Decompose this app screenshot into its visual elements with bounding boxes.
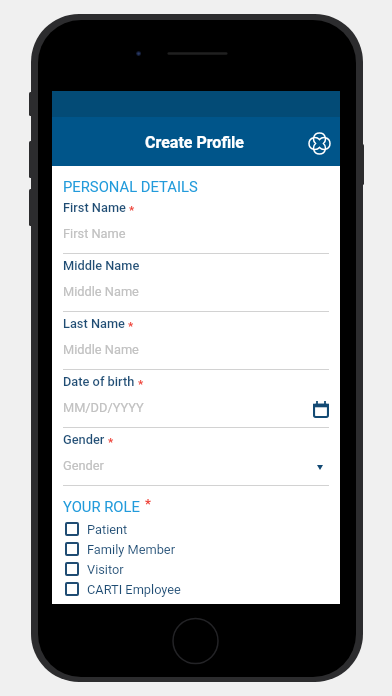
button[interactable]: Family Member	[63, 539, 329, 559]
button[interactable]: Date of birth	[63, 370, 329, 428]
staticText: Gender	[63, 458, 104, 473]
staticText: Last Name	[63, 316, 125, 331]
staticText: *	[129, 203, 135, 216]
staticText: MM/DD/YYYY	[63, 400, 144, 415]
staticText: First Name	[63, 226, 126, 241]
staticText: Middle Name	[63, 342, 139, 357]
staticText: PERSONAL DETAILS	[63, 178, 198, 195]
button[interactable]: Visitor	[63, 559, 329, 579]
staticText: Date of birth	[63, 374, 135, 389]
staticText: Create Profile	[145, 133, 244, 152]
button[interactable]: CARTI Employee	[63, 579, 329, 599]
staticText: Patient	[87, 522, 128, 537]
button[interactable]: Last Name	[63, 312, 329, 370]
button[interactable]: CARTI logo	[305, 128, 333, 156]
staticText: Middle Name	[63, 284, 139, 299]
staticText: Gender	[63, 432, 105, 447]
button[interactable]: Open dropdown	[317, 465, 323, 470]
staticText: *	[108, 435, 114, 448]
button[interactable]: Gender	[63, 428, 329, 486]
button[interactable]: Pick date	[313, 401, 329, 418]
staticText: YOUR ROLE	[63, 498, 140, 515]
staticText: Family Member	[87, 542, 175, 557]
staticText: CARTI Employee	[87, 582, 181, 597]
staticText: *	[138, 377, 144, 390]
staticText: Visitor	[87, 562, 124, 577]
staticText: Middle Name	[63, 258, 140, 273]
button[interactable]: Patient	[63, 519, 329, 539]
button[interactable]: First Name	[63, 195, 329, 254]
staticText: *	[145, 496, 151, 511]
staticText: *	[128, 319, 134, 332]
button[interactable]: Middle Name	[63, 254, 329, 312]
staticText: First Name	[63, 200, 126, 215]
